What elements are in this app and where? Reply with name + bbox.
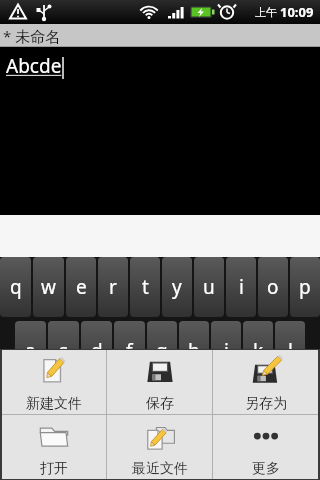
button[interactable]: 最近文件: [107, 415, 212, 479]
staticText: 上午: [255, 5, 277, 19]
button[interactable]: q: [0, 257, 31, 317]
button[interactable]: c: [108, 385, 140, 441]
button[interactable]: t: [130, 257, 160, 317]
button[interactable]: h: [179, 321, 209, 381]
button[interactable]: p: [290, 257, 320, 317]
button[interactable]: 打开: [2, 415, 106, 479]
staticText: 更多: [252, 460, 280, 478]
button[interactable]: d: [81, 321, 112, 381]
button[interactable]: r: [98, 257, 128, 317]
staticText: h: [188, 338, 200, 364]
button[interactable]: k: [243, 321, 273, 381]
button[interactable]: n: [212, 385, 245, 441]
staticText: d: [91, 338, 103, 364]
button[interactable]: e: [66, 257, 96, 317]
button[interactable]: a: [15, 321, 46, 381]
staticText: i: [239, 274, 244, 300]
button[interactable]: g: [147, 321, 177, 381]
staticText: b: [188, 400, 200, 426]
button[interactable]: o: [258, 257, 288, 317]
button[interactable]: x: [74, 385, 106, 441]
staticText: * 未命名: [3, 26, 61, 46]
button[interactable]: j: [211, 321, 241, 381]
staticText: l: [288, 338, 293, 364]
button[interactable]: u: [194, 257, 224, 317]
staticText: m: [255, 400, 273, 426]
staticText: u: [203, 274, 215, 300]
staticText: 最近文件: [132, 460, 188, 478]
staticText: 打开: [40, 460, 68, 478]
staticText: r: [109, 274, 117, 300]
button[interactable]: 另存为: [213, 350, 318, 414]
staticText: n: [223, 400, 235, 426]
staticText: p: [299, 274, 311, 300]
staticText: 保存: [146, 395, 174, 413]
button[interactable]: b: [177, 385, 210, 441]
button[interactable]: 新建文件: [2, 350, 106, 414]
staticText: z: [52, 400, 61, 426]
staticText: Abcde: [6, 53, 62, 79]
staticText: 另存为: [245, 395, 287, 413]
button[interactable]: s: [48, 321, 79, 381]
button[interactable]: v: [142, 385, 175, 441]
staticText: v: [154, 400, 164, 426]
staticText: 新建文件: [26, 395, 82, 413]
staticText: f: [126, 338, 133, 364]
staticText: c: [119, 400, 129, 426]
staticText: o: [267, 274, 279, 300]
staticText: x: [85, 400, 96, 426]
staticText: k: [253, 338, 264, 364]
button[interactable]: f: [114, 321, 145, 381]
button[interactable]: l: [275, 321, 305, 381]
staticText: q: [10, 274, 22, 300]
staticText: t: [142, 274, 149, 300]
staticText: e: [76, 274, 87, 300]
staticText: j: [224, 338, 229, 364]
staticText: a: [25, 338, 36, 364]
button[interactable]: m: [247, 385, 280, 441]
staticText: s: [59, 338, 69, 364]
button[interactable]: 更多: [213, 415, 318, 479]
staticText: y: [172, 274, 182, 300]
button[interactable]: i: [226, 257, 256, 317]
staticText: w: [41, 274, 56, 300]
button[interactable]: y: [162, 257, 192, 317]
button[interactable]: z: [40, 385, 72, 441]
button[interactable]: 保存: [107, 350, 212, 414]
staticText: g: [156, 338, 168, 364]
staticText: 10:09: [280, 3, 314, 21]
button[interactable]: w: [33, 257, 64, 317]
